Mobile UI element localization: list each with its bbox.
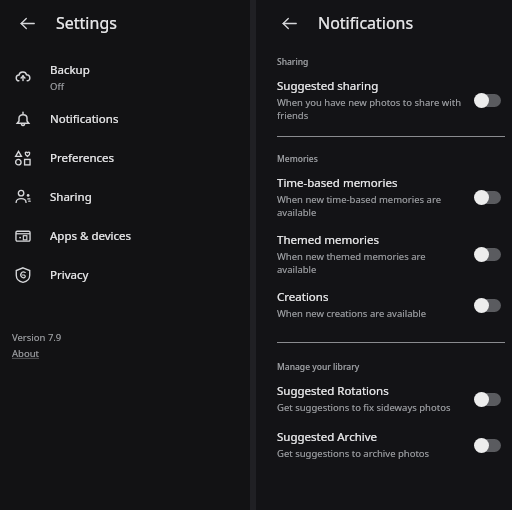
staticText: Notifications bbox=[318, 12, 414, 34]
staticText: Privacy bbox=[50, 267, 89, 283]
staticText: Get suggestions to archive photos bbox=[277, 447, 430, 460]
button[interactable]: Back bbox=[13, 9, 41, 37]
staticText: Themed memories bbox=[277, 232, 379, 248]
button[interactable]: Toggle bbox=[473, 90, 503, 110]
button[interactable]: Suggested sharing bbox=[256, 76, 512, 124]
staticText: Sharing bbox=[50, 189, 92, 205]
staticText: Preferences bbox=[50, 150, 115, 166]
button[interactable]: Privacy bbox=[0, 255, 250, 294]
staticText: Version 7.9 bbox=[12, 331, 62, 344]
staticText: Suggested Archive bbox=[277, 429, 378, 445]
button[interactable]: Notifications bbox=[0, 99, 250, 138]
staticText: Time-based memories bbox=[277, 175, 398, 191]
staticText: Sharing bbox=[277, 56, 309, 68]
button[interactable]: Preferences bbox=[0, 138, 250, 177]
staticText: When new time-based memories are availab… bbox=[277, 193, 441, 219]
button[interactable]: Backup bbox=[0, 55, 250, 99]
staticText: Off bbox=[50, 80, 64, 93]
button[interactable]: Suggested Archive bbox=[256, 427, 512, 462]
button[interactable]: Sharing bbox=[0, 177, 250, 216]
button[interactable]: Themed memories bbox=[256, 230, 512, 278]
button[interactable]: Toggle bbox=[473, 435, 503, 455]
button[interactable]: Creations bbox=[256, 287, 512, 322]
staticText: Manage your library bbox=[277, 361, 360, 373]
staticText: Creations bbox=[277, 289, 329, 305]
button[interactable]: About bbox=[12, 347, 39, 360]
button[interactable]: Toggle bbox=[473, 295, 503, 315]
staticText: About bbox=[12, 347, 39, 360]
button[interactable]: Apps & devices bbox=[0, 216, 250, 255]
staticText: When you have new photos to share with f… bbox=[277, 96, 462, 122]
button[interactable]: Toggle bbox=[473, 244, 503, 264]
button[interactable]: Suggested Rotations bbox=[256, 381, 512, 416]
staticText: Suggested sharing bbox=[277, 78, 379, 94]
staticText: Apps & devices bbox=[50, 228, 132, 244]
button[interactable]: Toggle bbox=[473, 389, 503, 409]
staticText: Suggested Rotations bbox=[277, 383, 389, 399]
staticText: Memories bbox=[277, 153, 318, 165]
staticText: When new themed memories are available bbox=[277, 250, 426, 276]
staticText: When new creations are available bbox=[277, 307, 427, 320]
staticText: Backup bbox=[50, 62, 90, 78]
staticText: Settings bbox=[56, 12, 117, 34]
button[interactable]: Back bbox=[275, 9, 303, 37]
staticText: Notifications bbox=[50, 111, 119, 127]
button[interactable]: Toggle bbox=[473, 187, 503, 207]
button[interactable]: Time-based memories bbox=[256, 173, 512, 221]
staticText: Get suggestions to fix sideways photos bbox=[277, 401, 451, 414]
